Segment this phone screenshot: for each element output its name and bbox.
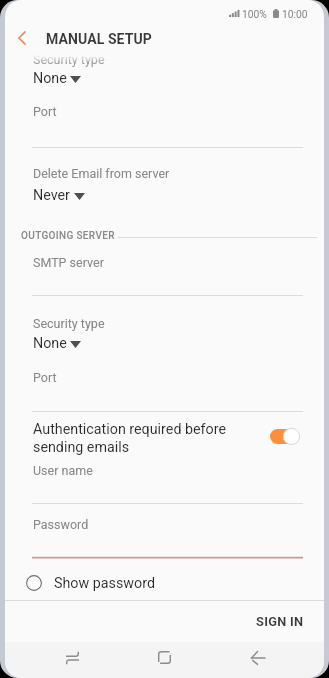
staticText: Security type [33, 316, 105, 331]
staticText: Show password [54, 575, 156, 592]
staticText: None [33, 335, 67, 352]
staticText: Never [33, 187, 70, 204]
staticText: OUTGOING SERVER [21, 230, 115, 242]
staticText: 10:00 [282, 8, 308, 20]
staticText: Delete Email from server [33, 166, 170, 181]
staticText: Port [33, 370, 57, 385]
staticText: SMTP server [33, 255, 104, 270]
staticText: 100% [242, 8, 267, 20]
button[interactable]: Home [148, 643, 183, 678]
staticText: MANUAL SETUP [46, 31, 152, 47]
staticText: Authentication required before sending e… [33, 421, 243, 456]
staticText: Port [33, 104, 57, 119]
staticText: SIGN IN [256, 614, 304, 629]
button[interactable]: Authentication required toggle [266, 424, 302, 450]
button[interactable]: SIGN IN [244, 601, 316, 641]
button[interactable]: Back [239, 643, 274, 678]
staticText: User name [33, 463, 93, 478]
button[interactable]: Recent apps [56, 643, 91, 678]
button[interactable]: Show password [26, 569, 186, 597]
staticText: Security type [33, 52, 105, 67]
staticText: Password [33, 517, 89, 532]
staticText: None [33, 70, 67, 87]
button[interactable]: Navigate up [7, 23, 37, 53]
